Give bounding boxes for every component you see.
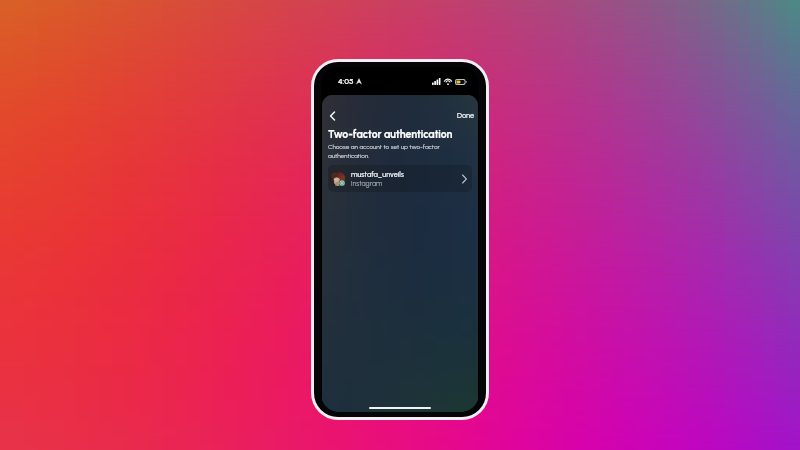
staticText: mustafa_unveils bbox=[351, 170, 404, 179]
staticText: Instagram bbox=[351, 179, 383, 187]
button[interactable]: Done bbox=[454, 109, 478, 122]
staticText: 4:05 bbox=[338, 76, 354, 86]
staticText: Two-factor authentication bbox=[328, 128, 453, 141]
button[interactable]: Back bbox=[324, 107, 341, 124]
staticText: Choose an account to set up two-factor a… bbox=[328, 143, 472, 159]
button[interactable]: mustafa_unveils bbox=[328, 165, 472, 192]
staticText: Done bbox=[457, 111, 475, 120]
